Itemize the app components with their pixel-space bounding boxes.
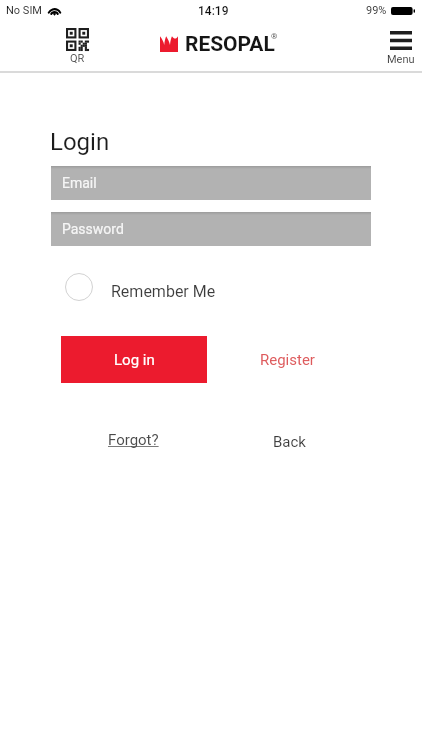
staticText: Log in xyxy=(114,351,155,369)
staticText: ® xyxy=(271,32,278,41)
button[interactable]: QR code scanner xyxy=(66,28,89,65)
staticText: RESOPAL xyxy=(185,32,275,57)
staticText: Menu xyxy=(387,53,415,66)
staticText: Login xyxy=(50,128,110,156)
button[interactable]: Register xyxy=(260,336,315,383)
button[interactable]: Back xyxy=(273,433,306,451)
staticText: Register xyxy=(260,351,315,369)
staticText: QR xyxy=(70,52,85,65)
staticText: 99% xyxy=(366,4,387,17)
button[interactable]: Menu xyxy=(387,31,415,66)
button[interactable]: Email xyxy=(51,166,371,200)
button[interactable]: Log in xyxy=(61,336,207,383)
button[interactable]: Password xyxy=(51,212,371,246)
staticText: Back xyxy=(273,433,306,451)
button[interactable]: Remember Me xyxy=(65,273,216,301)
staticText: Password xyxy=(62,221,124,237)
staticText: Email xyxy=(62,175,97,191)
staticText: Remember Me xyxy=(111,282,216,301)
staticText: Forgot? xyxy=(108,431,159,449)
staticText: 14:19 xyxy=(198,4,229,18)
staticText: No SIM xyxy=(6,4,42,17)
button[interactable]: Forgot? xyxy=(108,431,159,449)
